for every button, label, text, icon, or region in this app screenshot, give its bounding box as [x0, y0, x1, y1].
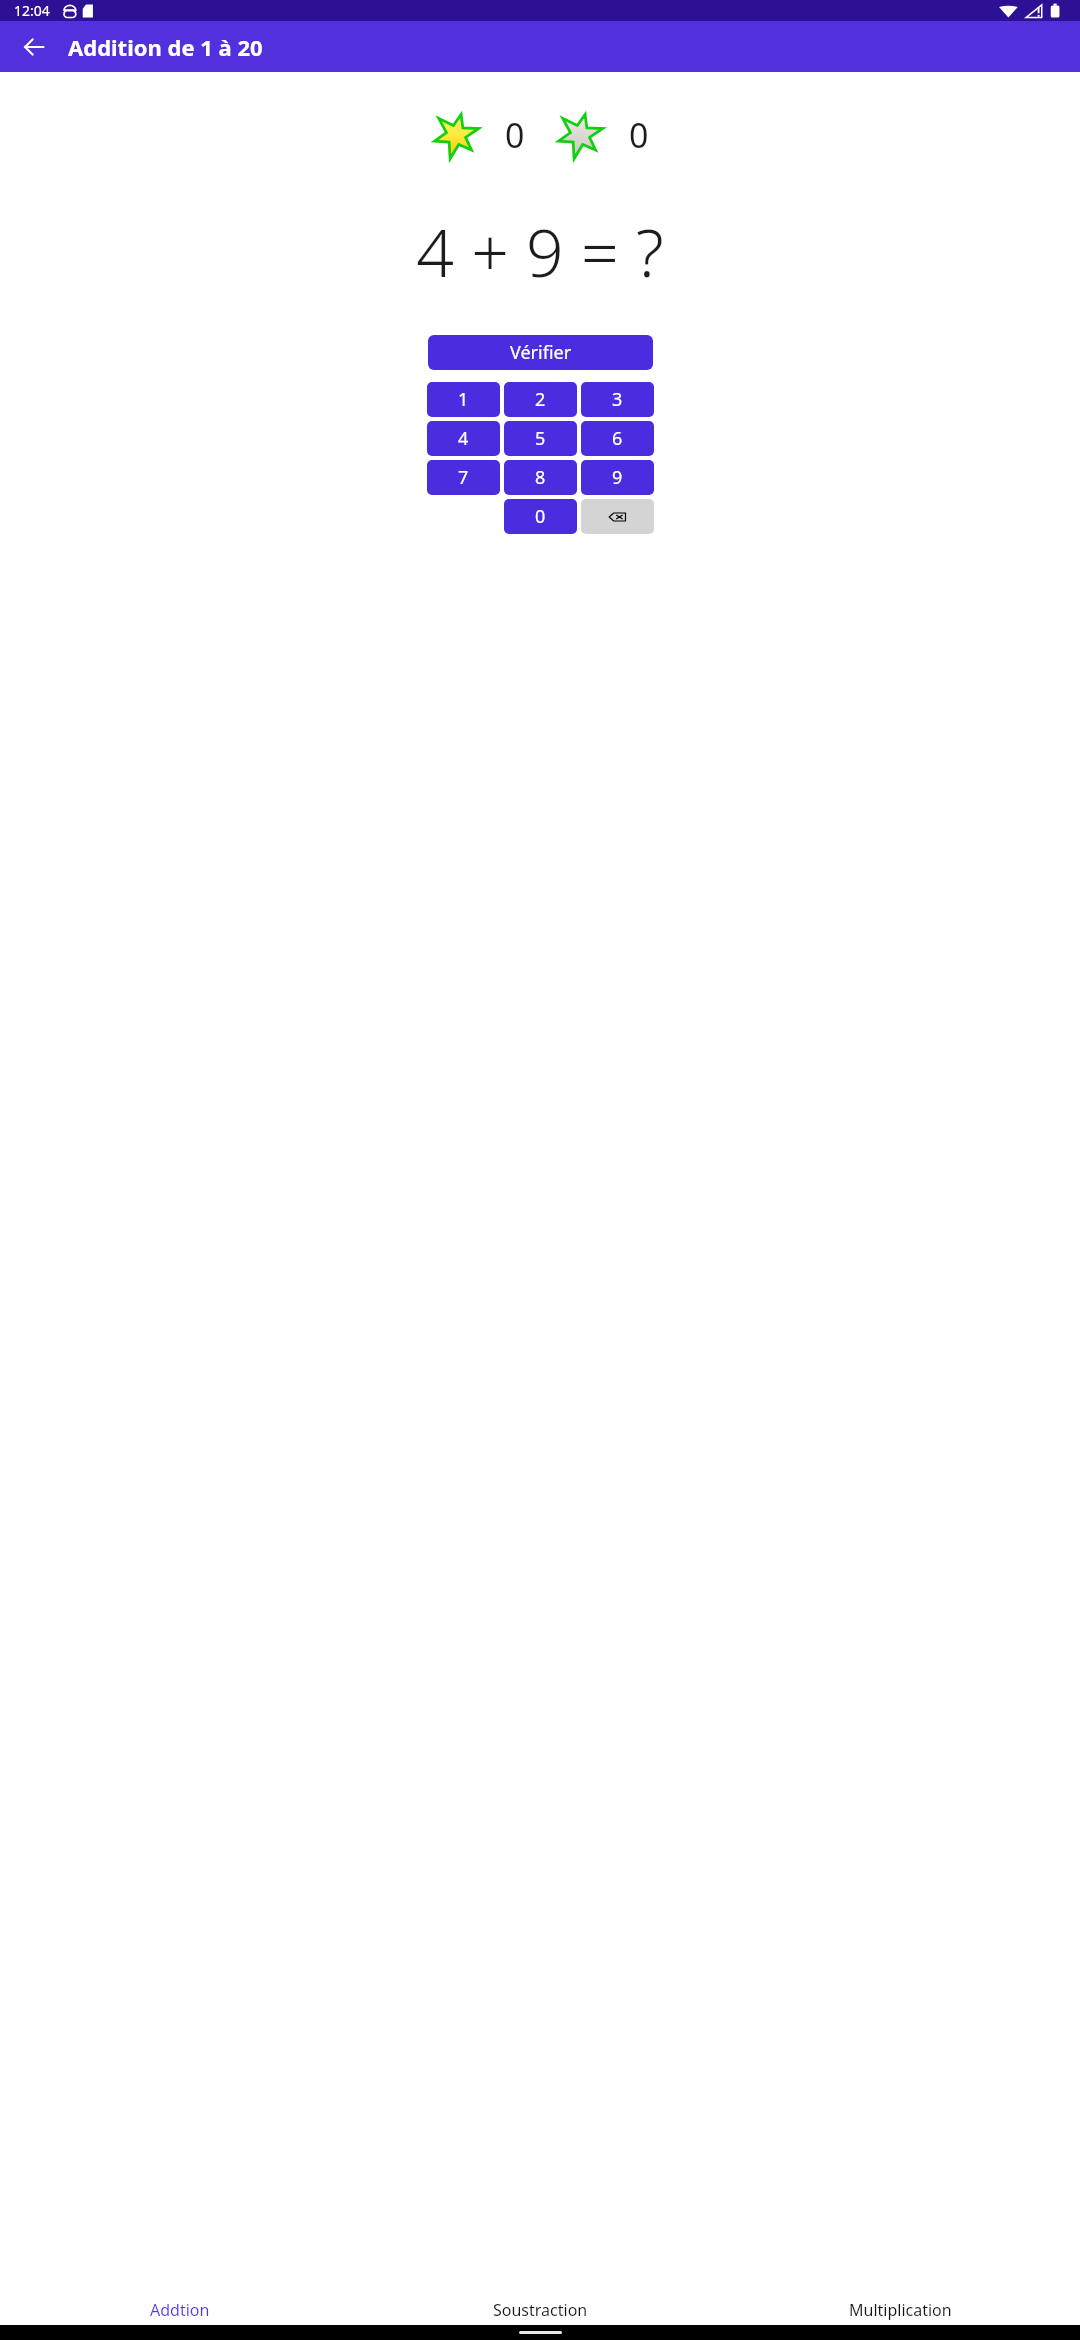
button[interactable]: 0: [504, 499, 577, 534]
staticText: 7: [458, 465, 469, 490]
staticText: 12:04: [14, 1, 50, 20]
button[interactable]: Addtion: [0, 2295, 360, 2325]
staticText: Soustraction: [493, 2299, 588, 2321]
button[interactable]: 8: [504, 460, 577, 495]
staticText: 0: [629, 112, 649, 158]
staticText: 5: [535, 426, 546, 451]
button[interactable]: 5: [504, 421, 577, 456]
staticText: 4: [458, 426, 469, 451]
staticText: 4 + 9 = ?: [416, 206, 664, 296]
staticText: Vérifier: [510, 340, 572, 365]
staticText: 1: [458, 387, 469, 412]
button[interactable]: 9: [581, 460, 654, 495]
staticText: Addition de 1 à 20: [68, 32, 263, 62]
staticText: 2: [535, 387, 546, 412]
button[interactable]: Soustraction: [360, 2295, 720, 2325]
staticText: Addtion: [150, 2299, 210, 2321]
staticText: 0: [505, 112, 525, 158]
staticText: 3: [612, 387, 623, 412]
button[interactable]: 1: [427, 382, 500, 417]
button[interactable]: 6: [581, 421, 654, 456]
button[interactable]: 4: [427, 421, 500, 456]
button[interactable]: Vérifier: [428, 335, 653, 370]
button[interactable]: 7: [427, 460, 500, 495]
staticText: 8: [535, 465, 546, 490]
staticText: Multiplication: [849, 2299, 952, 2321]
staticText: 6: [612, 426, 623, 451]
button[interactable]: 2: [504, 382, 577, 417]
staticText: 9: [612, 465, 623, 490]
button[interactable]: Back: [10, 23, 58, 71]
staticText: 0: [535, 504, 546, 529]
button[interactable]: Multiplication: [720, 2295, 1080, 2325]
button[interactable]: 3: [581, 382, 654, 417]
button[interactable]: Backspace: [581, 499, 654, 534]
